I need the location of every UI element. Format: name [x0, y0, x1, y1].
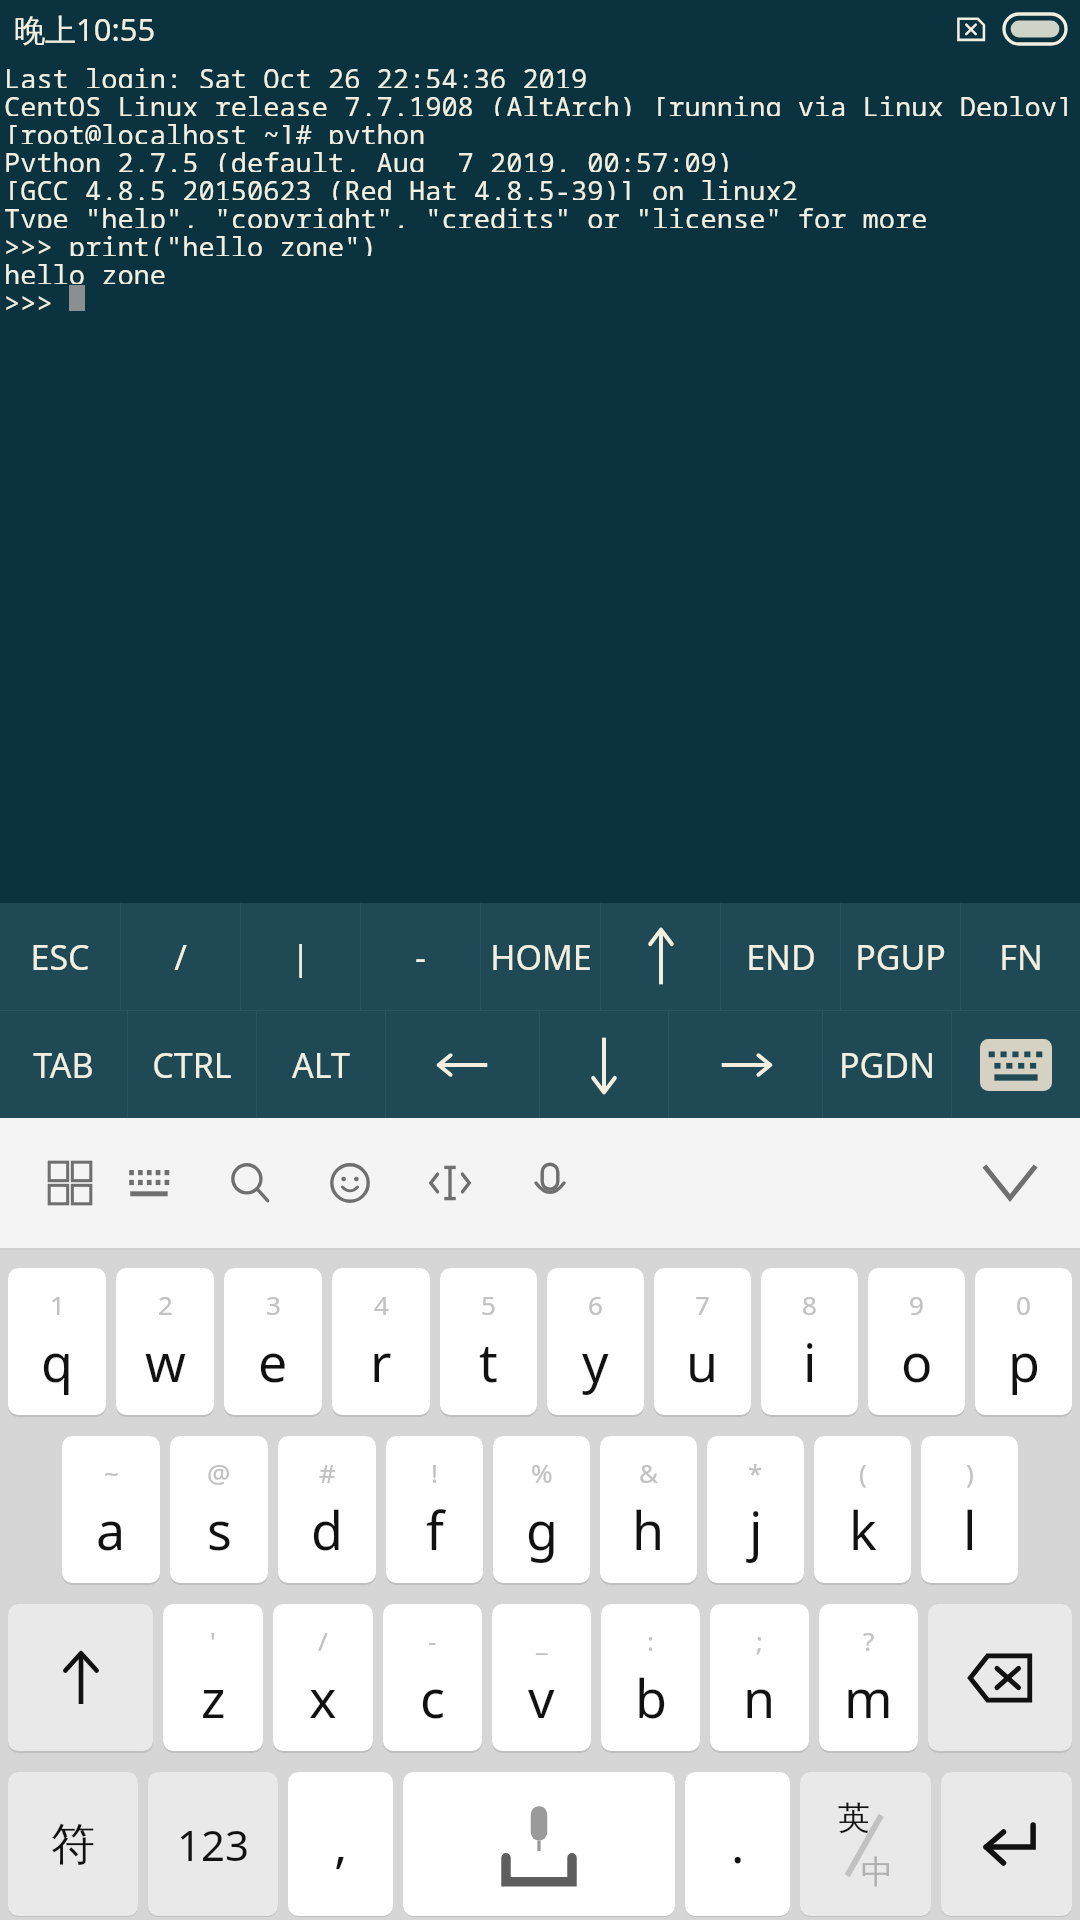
staticText: l: [963, 1494, 977, 1565]
button[interactable]: (: [814, 1436, 911, 1588]
button[interactable]: Language switch: [800, 1772, 931, 1920]
button[interactable]: ': [163, 1604, 263, 1756]
staticText: q: [41, 1326, 73, 1397]
staticText: 0: [1016, 1287, 1031, 1322]
button[interactable]: 6: [547, 1268, 644, 1420]
button[interactable]: .: [685, 1772, 790, 1920]
button[interactable]: ~: [62, 1436, 160, 1588]
button[interactable]: &: [600, 1436, 697, 1588]
button[interactable]: Enter: [941, 1772, 1072, 1920]
staticText: /: [174, 934, 187, 980]
button[interactable]: @: [170, 1436, 268, 1588]
staticText: [root@localhost ~]# python: [4, 116, 426, 144]
button[interactable]: Backspace: [928, 1604, 1072, 1756]
button[interactable]: -: [361, 903, 480, 1010]
button[interactable]: 0: [975, 1268, 1072, 1420]
button[interactable]: #: [278, 1436, 376, 1588]
button[interactable]: !: [386, 1436, 483, 1588]
button[interactable]: Keyboard layout: [100, 1118, 200, 1248]
staticText: w: [145, 1326, 186, 1397]
staticText: 晚上10:55: [14, 8, 156, 50]
staticText: a: [96, 1494, 126, 1565]
staticText: r: [370, 1326, 392, 1397]
button[interactable]: %: [493, 1436, 590, 1588]
staticText: FN: [999, 934, 1043, 980]
button[interactable]: HOME: [481, 903, 600, 1010]
button[interactable]: 5: [440, 1268, 537, 1420]
button[interactable]: PGUP: [841, 903, 960, 1010]
button[interactable]: *: [707, 1436, 804, 1588]
staticText: Python 2.7.5 (default, Aug 7 2019, 00:57…: [4, 144, 733, 172]
button[interactable]: :: [601, 1604, 700, 1756]
staticText: (: [859, 1455, 867, 1490]
button[interactable]: 符: [8, 1772, 138, 1920]
staticText: u: [686, 1326, 719, 1397]
button[interactable]: [540, 1011, 668, 1118]
button[interactable]: ?: [819, 1604, 918, 1756]
button[interactable]: ;: [710, 1604, 809, 1756]
button[interactable]: ESC: [0, 903, 120, 1010]
button[interactable]: END: [721, 903, 840, 1010]
staticText: y: [582, 1326, 609, 1397]
button[interactable]: [669, 1011, 822, 1118]
staticText: -: [415, 934, 426, 980]
staticText: 2: [158, 1287, 173, 1322]
button[interactable]: /: [121, 903, 240, 1010]
staticText: c: [420, 1662, 445, 1733]
staticText: 1: [50, 1287, 65, 1322]
button[interactable]: [386, 1011, 539, 1118]
button[interactable]: Cursor: [400, 1118, 500, 1248]
button[interactable]: 2: [116, 1268, 214, 1420]
button[interactable]: 8: [761, 1268, 858, 1420]
staticText: CTRL: [152, 1042, 232, 1088]
staticText: /: [318, 1623, 328, 1658]
button[interactable]: 123: [148, 1772, 278, 1920]
staticText: TAB: [33, 1042, 94, 1088]
button[interactable]: Toggle keyboard: [952, 1011, 1080, 1118]
staticText: i: [803, 1326, 817, 1397]
staticText: b: [635, 1662, 667, 1733]
button[interactable]: _: [492, 1604, 591, 1756]
staticText: 8: [802, 1287, 817, 1322]
staticText: _: [536, 1623, 548, 1658]
button[interactable]: Hide keyboard: [940, 1118, 1080, 1248]
staticText: t: [479, 1326, 498, 1397]
staticText: ALT: [292, 1042, 350, 1088]
button[interactable]: 4: [332, 1268, 430, 1420]
button[interactable]: ALT: [257, 1011, 385, 1118]
button[interactable]: |: [241, 903, 360, 1010]
staticText: 中: [861, 1852, 893, 1892]
staticText: h: [632, 1494, 665, 1565]
staticText: %: [531, 1455, 553, 1490]
button[interactable]: Voice input: [500, 1118, 600, 1248]
staticText: Type "help", "copyright", "credits" or "…: [4, 200, 1080, 228]
button[interactable]: 9: [868, 1268, 965, 1420]
button[interactable]: CTRL: [128, 1011, 256, 1118]
staticText: #: [319, 1455, 336, 1490]
staticText: [GCC 4.8.5 20150623 (Red Hat 4.8.5-39)] …: [4, 172, 798, 200]
button[interactable]: TAB: [0, 1011, 127, 1118]
button[interactable]: FN: [961, 903, 1080, 1010]
button[interactable]: Emoji: [300, 1118, 400, 1248]
staticText: 符: [51, 1817, 95, 1872]
button[interactable]: PGDN: [823, 1011, 951, 1118]
staticText: >>>: [4, 284, 69, 312]
button[interactable]: 3: [224, 1268, 322, 1420]
button[interactable]: Grid: [40, 1118, 100, 1248]
button[interactable]: Search: [200, 1118, 300, 1248]
staticText: 6: [588, 1287, 603, 1322]
button[interactable]: Space: [403, 1772, 675, 1920]
button[interactable]: 7: [654, 1268, 751, 1420]
button[interactable]: /: [273, 1604, 373, 1756]
staticText: g: [526, 1494, 558, 1565]
button[interactable]: -: [383, 1604, 482, 1756]
button[interactable]: ,: [288, 1772, 393, 1920]
button[interactable]: 1: [8, 1268, 106, 1420]
button[interactable]: ): [921, 1436, 1018, 1588]
button[interactable]: [601, 903, 720, 1010]
staticText: e: [258, 1326, 288, 1397]
staticText: p: [1008, 1326, 1040, 1397]
button[interactable]: Shift: [8, 1604, 153, 1756]
staticText: 123: [177, 1816, 250, 1873]
staticText: ;: [756, 1623, 763, 1658]
